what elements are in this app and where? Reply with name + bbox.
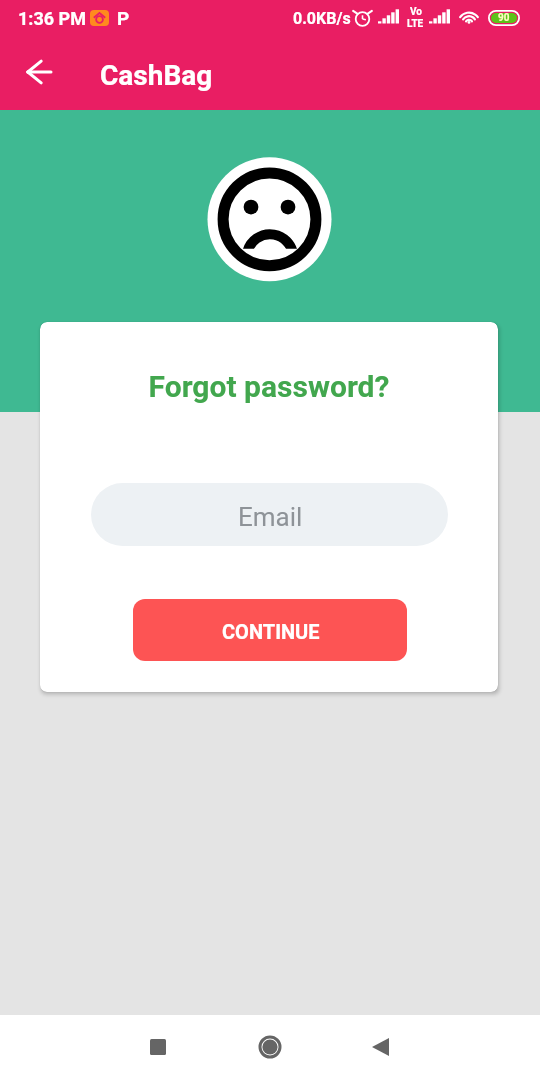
staticText: Email bbox=[238, 502, 303, 532]
staticText: CONTINUE bbox=[222, 620, 320, 643]
staticText: Forgot password? bbox=[40, 369, 498, 404]
staticText: 90 bbox=[498, 12, 510, 24]
staticText: 0.0KB/s bbox=[293, 9, 351, 28]
button[interactable]: Home bbox=[240, 1017, 300, 1077]
staticText: CashBag bbox=[100, 59, 213, 92]
button[interactable]: Back bbox=[350, 1017, 410, 1077]
staticText: 1:36 PM bbox=[18, 8, 86, 29]
button[interactable]: Back bbox=[9, 42, 69, 102]
staticText: P bbox=[117, 7, 130, 29]
button[interactable]: Recent apps bbox=[128, 1017, 188, 1077]
staticText: Vo bbox=[410, 6, 422, 18]
staticText: LTE bbox=[407, 18, 424, 30]
button[interactable]: CONTINUE bbox=[133, 599, 407, 661]
button[interactable]: Email bbox=[91, 483, 448, 546]
